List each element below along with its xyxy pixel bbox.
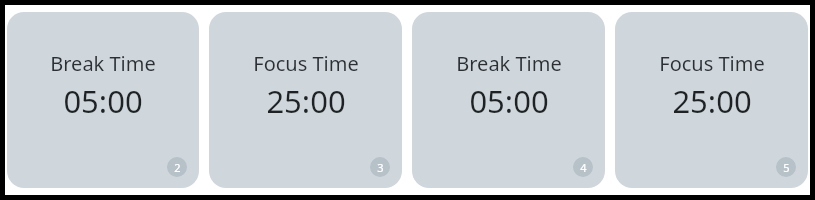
staticText: Break Time xyxy=(50,50,156,77)
button[interactable]: Break Time xyxy=(412,12,605,188)
staticText: 4 xyxy=(580,160,587,175)
staticText: 3 xyxy=(377,160,384,175)
staticText: 25:00 xyxy=(266,80,346,122)
staticText: 05:00 xyxy=(469,80,549,122)
button[interactable]: Focus Time xyxy=(615,12,808,188)
staticText: 05:00 xyxy=(63,80,143,122)
staticText: 5 xyxy=(783,160,790,175)
button[interactable]: Focus Time xyxy=(209,12,402,188)
button[interactable]: Break Time xyxy=(7,12,199,188)
staticText: Break Time xyxy=(456,50,562,77)
staticText: Focus Time xyxy=(253,50,359,77)
staticText: Focus Time xyxy=(659,50,765,77)
staticText: 25:00 xyxy=(672,80,752,122)
staticText: 2 xyxy=(174,160,181,175)
